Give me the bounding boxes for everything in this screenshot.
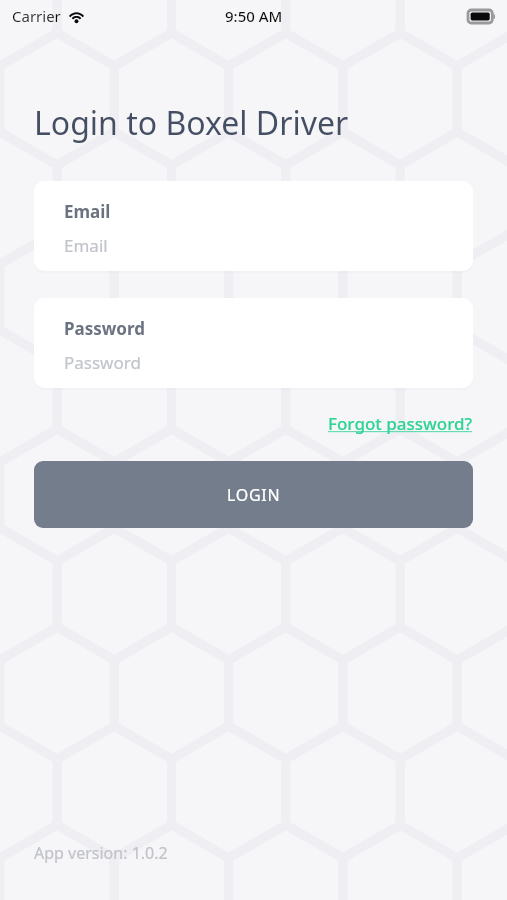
button[interactable]: Email — [34, 181, 473, 271]
staticText: LOGIN — [227, 484, 281, 506]
staticText: App version: 1.0.2 — [34, 842, 168, 864]
button[interactable]: Forgot password? — [328, 410, 507, 437]
staticText: Login to Boxel Driver — [34, 101, 349, 145]
staticText: Password — [64, 351, 141, 374]
staticText: Password — [64, 317, 145, 340]
button[interactable]: Password — [34, 298, 473, 388]
staticText: Email — [64, 200, 111, 223]
button[interactable]: LOGIN — [34, 461, 473, 528]
staticText: Email — [64, 234, 108, 257]
staticText: Forgot password? — [328, 412, 473, 435]
staticText: 9:50 AM — [225, 6, 283, 26]
staticText: Carrier — [12, 6, 61, 26]
